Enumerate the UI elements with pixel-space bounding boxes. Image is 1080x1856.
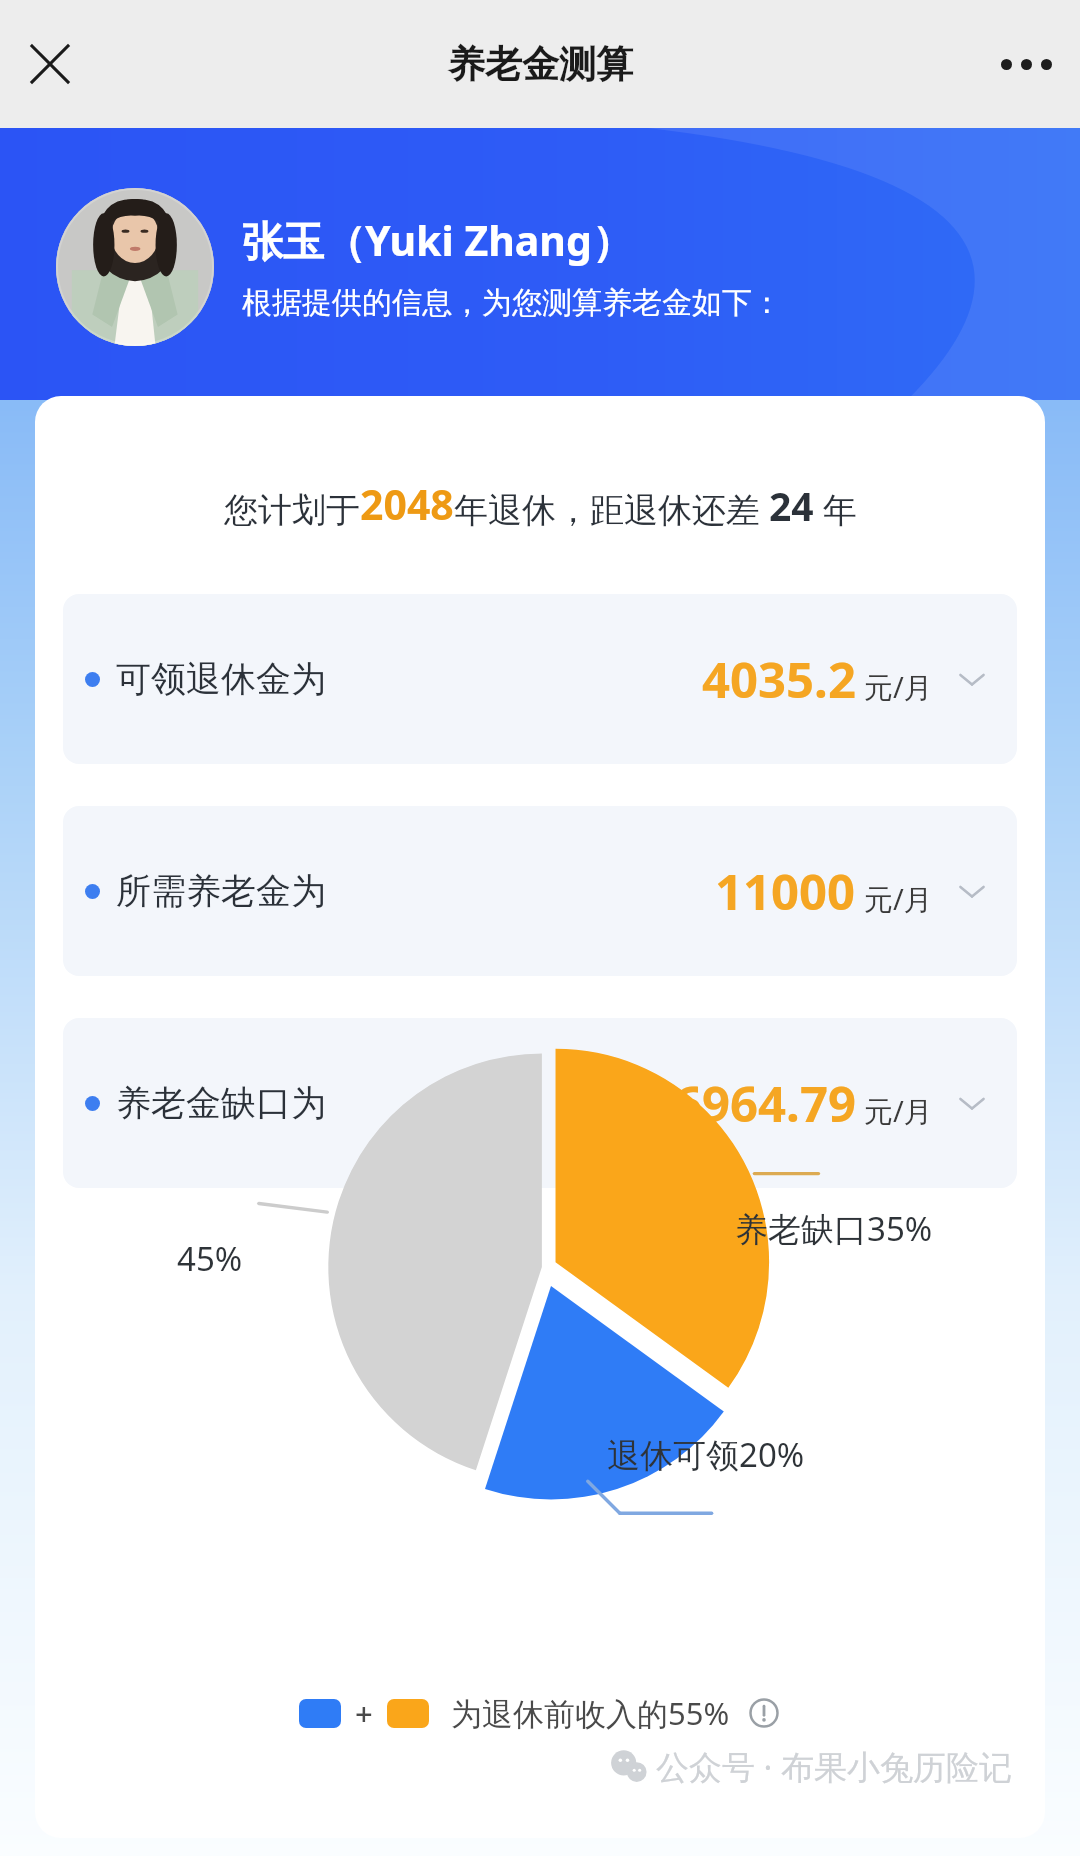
staticText: 6964.79 (674, 1070, 856, 1137)
staticText: 公众号 · 布果小兔历险记 (656, 1744, 1013, 1789)
staticText: 4035.2 (702, 646, 856, 713)
button[interactable]: More options (992, 30, 1060, 98)
button[interactable]: 养老金缺口为 (63, 1018, 1017, 1188)
staticText: 24 (769, 479, 814, 532)
staticText: 所需养老金为 (116, 869, 326, 913)
staticText: 养老金缺口为 (116, 1081, 326, 1125)
staticText: 为退休前收入的55% (451, 1692, 730, 1734)
staticText: 年退休，距退休还差 (454, 486, 769, 532)
staticText: 元/月 (864, 667, 933, 707)
staticText: 根据提供的信息，为您测算养老金如下： (242, 284, 782, 322)
staticText: 您计划于 (224, 489, 360, 532)
button[interactable]: Close (16, 30, 84, 98)
button[interactable]: Info (746, 1695, 782, 1731)
staticText: 45% (177, 1236, 243, 1281)
staticText: 养老缺口35% (735, 1206, 933, 1251)
staticText: 张玉（Yuki Zhang） (242, 212, 633, 268)
staticText: 2048 (360, 476, 454, 532)
staticText: + (355, 1692, 373, 1734)
staticText: 11000 (715, 858, 856, 925)
staticText: 养老金测算 (448, 41, 633, 88)
button[interactable]: 所需养老金为 (63, 806, 1017, 976)
staticText: 年 (814, 486, 857, 532)
staticText: 元/月 (864, 879, 933, 919)
button[interactable]: 可领退休金为 (63, 594, 1017, 764)
staticText: 元/月 (864, 1091, 933, 1131)
staticText: 可领退休金为 (116, 657, 326, 701)
staticText: 退休可领20% (607, 1432, 805, 1477)
